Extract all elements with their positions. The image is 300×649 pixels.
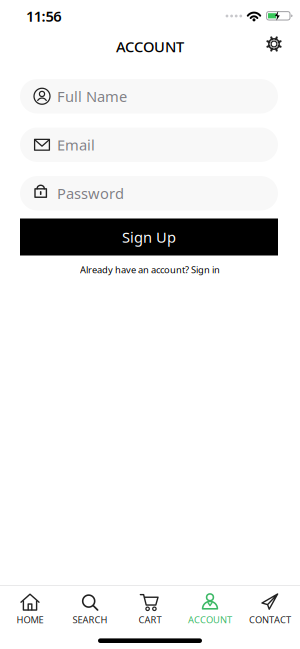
staticText: Email bbox=[57, 135, 95, 154]
button[interactable]: Already have an account? Sign in bbox=[80, 263, 220, 276]
staticText: ACCOUNT bbox=[188, 613, 232, 626]
button[interactable]: Full Name bbox=[20, 79, 278, 113]
button[interactable]: SEARCH bbox=[60, 591, 120, 628]
button[interactable]: Sign Up bbox=[20, 218, 278, 255]
button[interactable]: Email bbox=[20, 127, 278, 162]
staticText: Sign Up bbox=[122, 227, 176, 247]
staticText: CONTACT bbox=[249, 613, 291, 626]
button[interactable]: CART bbox=[120, 591, 180, 628]
staticText: Full Name bbox=[57, 86, 127, 106]
staticText: ACCOUNT bbox=[116, 37, 184, 56]
staticText: 11:56 bbox=[26, 6, 61, 26]
button[interactable]: Password bbox=[20, 176, 278, 210]
staticText: Already have an account? Sign in bbox=[80, 263, 220, 276]
staticText: Password bbox=[57, 183, 124, 203]
button[interactable]: HOME bbox=[0, 591, 60, 628]
button[interactable]: CONTACT bbox=[240, 591, 300, 628]
staticText: HOME bbox=[16, 613, 43, 626]
button[interactable]: Settings bbox=[265, 35, 283, 53]
button[interactable]: ACCOUNT bbox=[180, 591, 240, 628]
staticText: SEARCH bbox=[72, 613, 107, 626]
staticText: CART bbox=[138, 613, 161, 626]
